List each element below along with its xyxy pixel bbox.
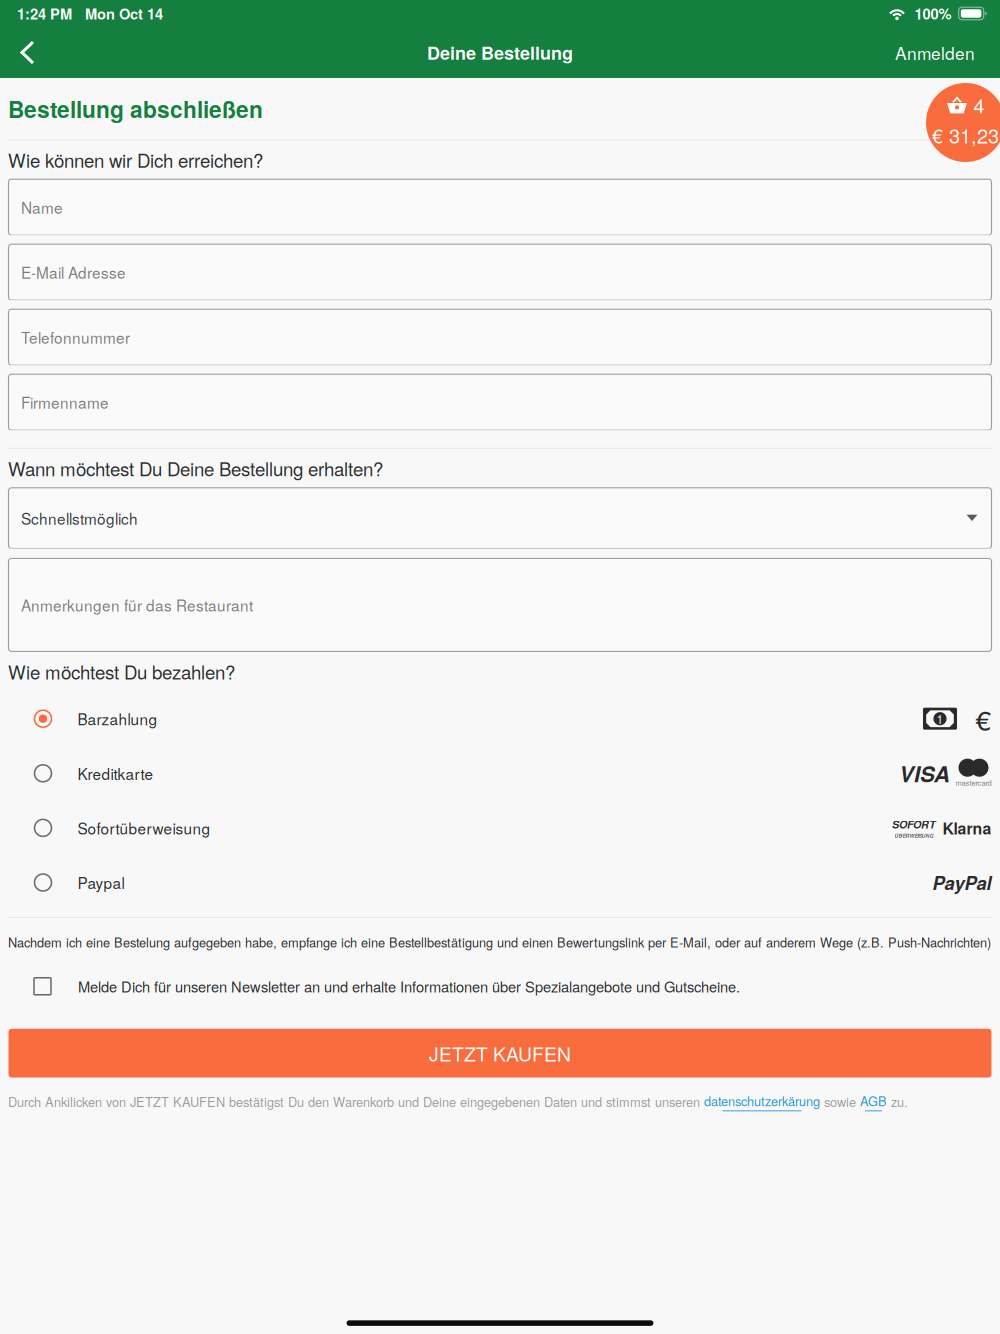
button[interactable]: Schnellstmöglich bbox=[8, 488, 991, 548]
button[interactable]: JETZT KAUFEN bbox=[8, 1029, 991, 1077]
staticText: mastercard bbox=[955, 777, 991, 788]
staticText: Anmelden bbox=[895, 40, 975, 65]
staticText: Telefonnummer bbox=[21, 326, 130, 348]
staticText: ÜBERWEISUNG bbox=[894, 832, 933, 839]
staticText: Mon Oct 14 bbox=[85, 3, 163, 24]
staticText: zu. bbox=[887, 1092, 908, 1110]
staticText: Melde Dich für unseren Newsletter an und… bbox=[78, 976, 740, 997]
staticText: Anmerkungen für das Restaurant bbox=[21, 594, 253, 616]
staticText: PayPal bbox=[932, 869, 991, 895]
button[interactable]: AGB bbox=[860, 1091, 887, 1111]
staticText: AGB bbox=[860, 1091, 887, 1110]
button[interactable]: Name bbox=[8, 179, 991, 235]
staticText: 1 bbox=[936, 710, 943, 727]
staticText: JETZT KAUFEN bbox=[429, 1039, 571, 1067]
staticText: Wann möchtest Du Deine Bestellung erhalt… bbox=[8, 455, 383, 482]
staticText: Wie möchtest Du bezahlen? bbox=[8, 658, 235, 685]
button[interactable]: Zurück bbox=[0, 27, 56, 78]
staticText: 4 bbox=[973, 90, 984, 119]
staticText: Deine Bestellung bbox=[427, 40, 573, 65]
button[interactable]: Telefonnummer bbox=[8, 309, 991, 365]
staticText: Sofortüberweisung bbox=[77, 817, 210, 839]
staticText: Wie können wir Dich erreichen? bbox=[8, 146, 263, 173]
staticText: € bbox=[975, 699, 991, 739]
staticText: € 31,23 bbox=[932, 120, 999, 149]
staticText: 1:24 PM bbox=[17, 3, 72, 24]
staticText: sowie bbox=[820, 1092, 860, 1110]
staticText: Schnellstmöglich bbox=[21, 507, 138, 529]
staticText: 100% bbox=[914, 3, 951, 24]
staticText: Barzahlung bbox=[77, 708, 157, 730]
staticText: Paypal bbox=[77, 871, 124, 893]
staticText: Bestellung abschließen bbox=[8, 92, 263, 125]
staticText: VISA bbox=[899, 758, 950, 789]
staticText: Firmenname bbox=[21, 391, 109, 413]
button[interactable]: datenschutzerkärung bbox=[704, 1091, 820, 1111]
button[interactable]: Anmerkungen für das Restaurant bbox=[8, 558, 991, 651]
staticText: Kreditkarte bbox=[77, 762, 153, 784]
staticText: datenschutzerkärung bbox=[704, 1091, 820, 1110]
button[interactable]: E-Mail Adresse bbox=[8, 244, 991, 300]
button[interactable]: Melde Dich für unseren Newsletter an und… bbox=[0, 966, 1000, 1006]
button[interactable]: Kreditkarte bbox=[0, 746, 1000, 801]
staticText: Durch Ankilicken von JETZT KAUFEN bestät… bbox=[8, 1092, 704, 1110]
staticText: Klarna bbox=[942, 816, 991, 839]
staticText: E-Mail Adresse bbox=[21, 261, 126, 283]
button[interactable]: Barzahlung bbox=[0, 691, 1000, 746]
button[interactable]: Sofortüberweisung bbox=[0, 801, 1000, 855]
staticText: SOFORT bbox=[892, 817, 936, 832]
button[interactable]: Firmenname bbox=[8, 374, 991, 430]
button[interactable]: Anmelden bbox=[870, 27, 1000, 78]
staticText: Name bbox=[21, 196, 63, 218]
button[interactable]: Warenkorb, 4 Artikel, 31,23 Euro bbox=[926, 83, 1000, 162]
staticText: Nachdem ich eine Bestelung aufgegeben ha… bbox=[8, 933, 991, 951]
button[interactable]: Paypal bbox=[0, 855, 1000, 910]
